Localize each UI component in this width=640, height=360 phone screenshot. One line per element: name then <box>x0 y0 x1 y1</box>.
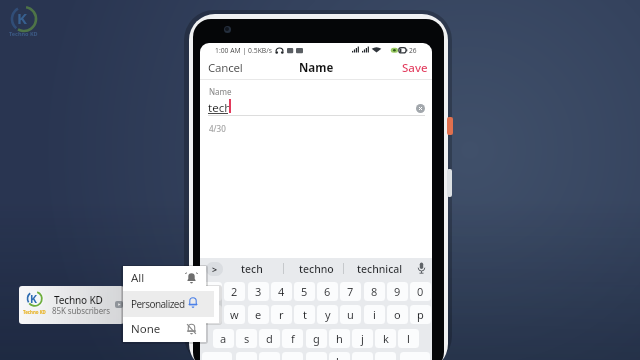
button[interactable]: Save <box>402 59 430 77</box>
button[interactable]: h <box>329 329 350 348</box>
button[interactable]: o <box>387 305 408 324</box>
staticText: 1:00 AM | 0.5KB/s <box>215 46 273 55</box>
staticText: d <box>266 331 273 346</box>
staticText: techno <box>299 262 334 276</box>
button[interactable] <box>416 104 425 113</box>
staticText: f <box>291 331 295 346</box>
button[interactable]: k <box>375 329 396 348</box>
button[interactable]: Cancel <box>208 59 256 77</box>
button[interactable] <box>19 286 124 324</box>
button[interactable]: d <box>259 329 280 348</box>
button[interactable]: i <box>364 305 385 324</box>
button[interactable]: q <box>201 305 222 324</box>
button[interactable]: y <box>317 305 338 324</box>
staticText: b <box>336 354 343 360</box>
staticText: 0 <box>417 284 424 299</box>
staticText: Name <box>299 60 334 76</box>
staticText: 26 <box>409 46 417 55</box>
button[interactable]: j <box>352 329 373 348</box>
button[interactable]: 7 <box>340 282 361 301</box>
button[interactable]: 2 <box>224 282 245 301</box>
button[interactable]: t <box>294 305 315 324</box>
button[interactable]: l <box>398 329 419 348</box>
staticText: > <box>212 263 218 275</box>
staticText: 4/30 <box>209 123 226 134</box>
staticText: 2 <box>231 284 238 299</box>
staticText: j <box>361 331 364 346</box>
staticText: 7 <box>347 284 354 299</box>
staticText: Name <box>209 86 232 97</box>
staticText: K <box>30 292 37 306</box>
staticText: s <box>244 331 250 346</box>
staticText: y <box>325 307 331 322</box>
staticText: Techno KD <box>54 293 103 307</box>
staticText: i <box>373 307 376 322</box>
button[interactable]: techno <box>288 258 345 279</box>
button[interactable]: g <box>306 329 327 348</box>
staticText: o <box>394 307 401 322</box>
staticText: tech <box>208 100 232 116</box>
button[interactable]: s <box>236 329 257 348</box>
button[interactable]: 4 <box>271 282 292 301</box>
staticText: l <box>407 331 410 346</box>
staticText: 9 <box>394 284 401 299</box>
button[interactable]: r <box>271 305 292 324</box>
staticText: K <box>17 8 27 28</box>
button[interactable]: 1 <box>201 282 222 301</box>
button[interactable]: a <box>213 329 234 348</box>
staticText: q <box>208 307 215 322</box>
staticText: 6 <box>324 284 331 299</box>
staticText: h <box>336 331 343 346</box>
staticText: Cancel <box>208 60 243 76</box>
button[interactable]: 6 <box>317 282 338 301</box>
staticText: Save <box>402 60 428 76</box>
button[interactable]: 5 <box>294 282 315 301</box>
staticText: Techno KD <box>9 30 38 37</box>
button[interactable]: Personalized <box>123 291 216 317</box>
button[interactable]: technical <box>348 258 411 279</box>
button[interactable]: f <box>282 329 303 348</box>
staticText: 5 <box>301 284 308 299</box>
button[interactable]: 9 <box>387 282 408 301</box>
button[interactable]: u <box>340 305 361 324</box>
button[interactable]: None <box>123 317 205 341</box>
button[interactable]: b <box>329 352 350 360</box>
staticText: u <box>347 307 354 322</box>
staticText: 8 <box>371 284 378 299</box>
staticText: e <box>255 307 262 322</box>
staticText: p <box>417 307 424 322</box>
staticText: Personalized <box>131 297 185 311</box>
staticText: tech <box>241 262 263 276</box>
staticText: Techno KD <box>23 309 46 315</box>
button[interactable]: 3 <box>248 282 269 301</box>
staticText: All <box>131 270 145 286</box>
button[interactable]: p <box>410 305 431 324</box>
staticText: a <box>220 331 227 346</box>
button[interactable]: e <box>248 305 269 324</box>
staticText: None <box>131 321 161 337</box>
staticText: g <box>313 331 320 346</box>
button[interactable]: All <box>123 266 205 290</box>
button[interactable]: w <box>224 305 245 324</box>
staticText: 4 <box>278 284 285 299</box>
button[interactable]: > <box>206 262 223 276</box>
staticText: r <box>279 307 284 322</box>
button[interactable]: 0 <box>410 282 431 301</box>
staticText: t <box>303 307 307 322</box>
button[interactable]: 8 <box>364 282 385 301</box>
button[interactable]: tech <box>228 258 275 279</box>
